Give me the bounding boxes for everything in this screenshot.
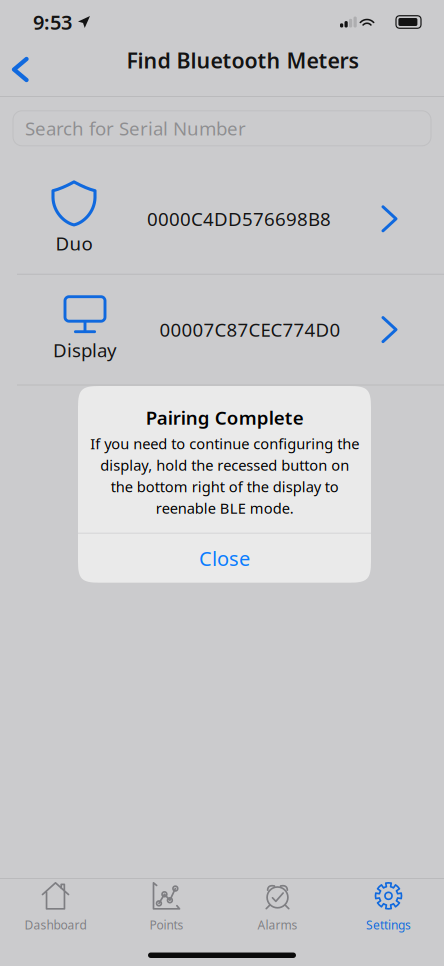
staticText: Pairing Complete: [145, 405, 303, 430]
staticText: Duo: [55, 231, 92, 256]
staticText: Search for Serial Number: [25, 116, 246, 141]
button[interactable]: Settings: [333, 880, 444, 936]
staticText: Display: [53, 338, 117, 362]
button[interactable]: Search for Serial Number: [13, 111, 431, 146]
button[interactable]: Back: [0, 44, 44, 88]
button[interactable]: Duo: [0, 164, 444, 274]
staticText: 00007C87CEC774D0: [159, 317, 340, 342]
button[interactable]: Display: [0, 275, 444, 385]
staticText: 9:53: [33, 9, 72, 35]
staticText: Points: [149, 917, 183, 933]
button[interactable]: Dashboard: [0, 880, 111, 936]
staticText: Settings: [366, 917, 411, 933]
staticText: Close: [199, 545, 250, 571]
staticText: Dashboard: [24, 917, 86, 933]
button[interactable]: Alarms: [222, 880, 333, 936]
button[interactable]: Points: [111, 880, 222, 936]
staticText: Find Bluetooth Meters: [126, 46, 359, 74]
staticText: 0000C4DD576698B8: [147, 206, 331, 231]
staticText: If you need to continue configuring the …: [90, 434, 359, 518]
staticText: Alarms: [257, 917, 297, 933]
button[interactable]: Close: [78, 534, 371, 583]
